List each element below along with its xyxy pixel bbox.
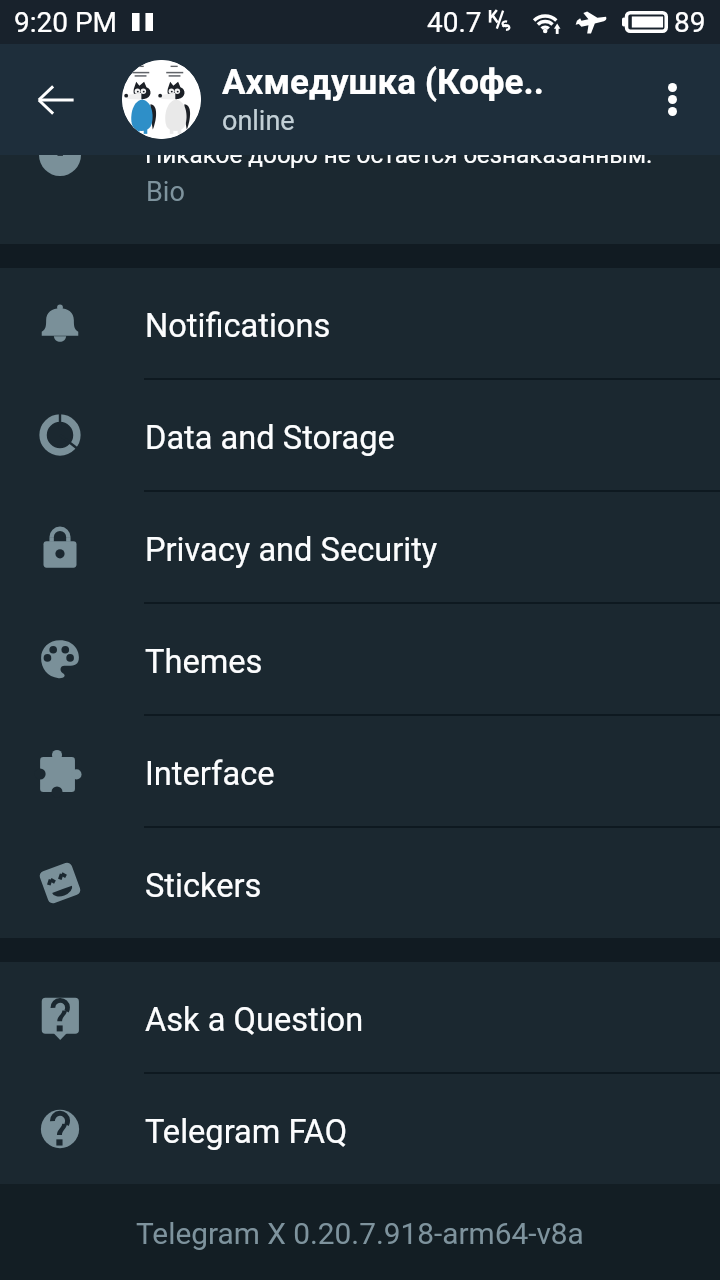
staticText: Themes <box>145 643 263 681</box>
button[interactable]: Telegram FAQ <box>0 1074 720 1184</box>
staticText: 9:20 PM <box>14 6 118 39</box>
button[interactable]: Notifications <box>0 268 720 378</box>
staticText: Ask a Question <box>145 1001 364 1039</box>
staticText: online <box>222 105 295 137</box>
staticText: Ахмедушка (Кофе.. <box>222 62 544 103</box>
staticText: Telegram FAQ <box>145 1113 348 1151</box>
button[interactable]: Stickers <box>0 828 720 938</box>
button[interactable]: Themes <box>0 604 720 714</box>
staticText: 40.7 <box>427 6 482 39</box>
button[interactable]: Back <box>0 44 112 155</box>
staticText: Privacy and Security <box>145 531 438 569</box>
staticText: Data and Storage <box>145 419 395 457</box>
button[interactable]: Interface <box>0 716 720 826</box>
button[interactable]: More options <box>624 44 720 155</box>
staticText: Telegram X 0.20.7.918-arm64-v8a <box>136 1216 584 1251</box>
staticText: Notifications <box>145 307 331 345</box>
staticText: Stickers <box>145 867 262 905</box>
button[interactable]: Data and Storage <box>0 380 720 490</box>
staticText: Никакое добро не остаётся безнаказанным. <box>145 155 653 168</box>
staticText: Bio <box>146 176 185 208</box>
staticText: Interface <box>145 755 275 793</box>
staticText: 89 <box>674 6 706 39</box>
button[interactable]: Privacy and Security <box>0 492 720 602</box>
button[interactable]: Ask a Question <box>0 962 720 1072</box>
